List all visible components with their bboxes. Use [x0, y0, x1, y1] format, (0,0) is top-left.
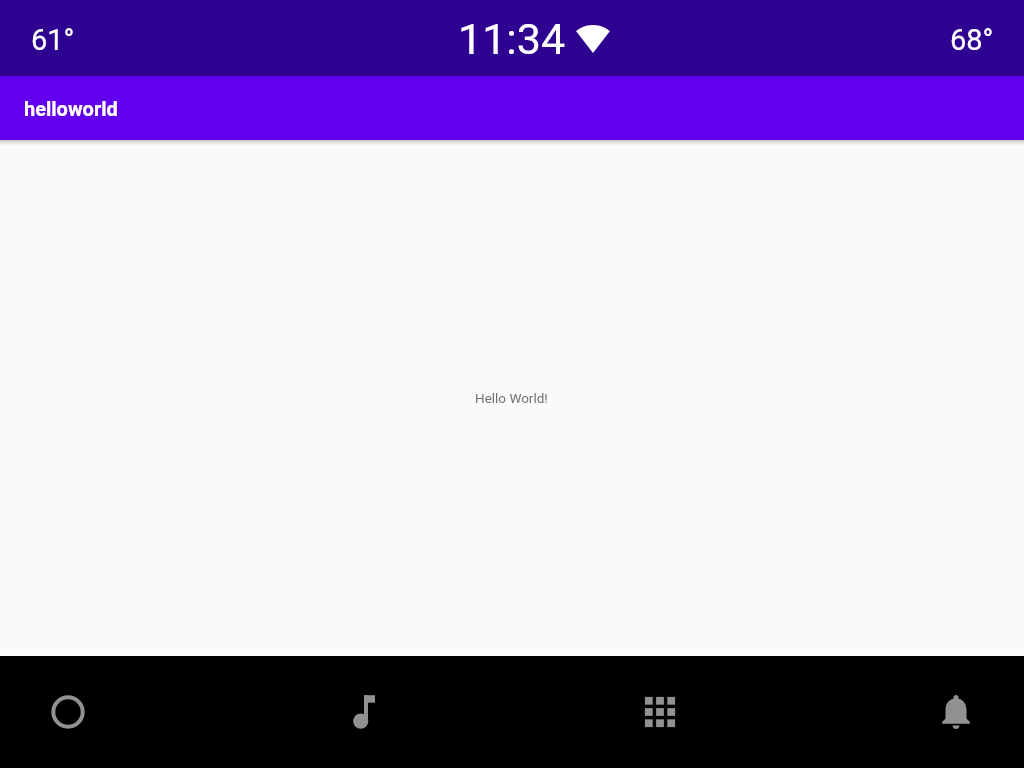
staticText: 68°: [950, 23, 994, 57]
staticText: 61°: [31, 23, 75, 57]
staticText: helloworld: [24, 97, 118, 120]
button[interactable]: Music: [344, 692, 384, 732]
staticText: Hello World!: [475, 390, 548, 406]
button[interactable]: Notifications: [936, 692, 976, 732]
button[interactable]: Apps: [640, 692, 680, 732]
staticText: 11:34: [458, 14, 566, 64]
button[interactable]: Home: [48, 692, 88, 732]
